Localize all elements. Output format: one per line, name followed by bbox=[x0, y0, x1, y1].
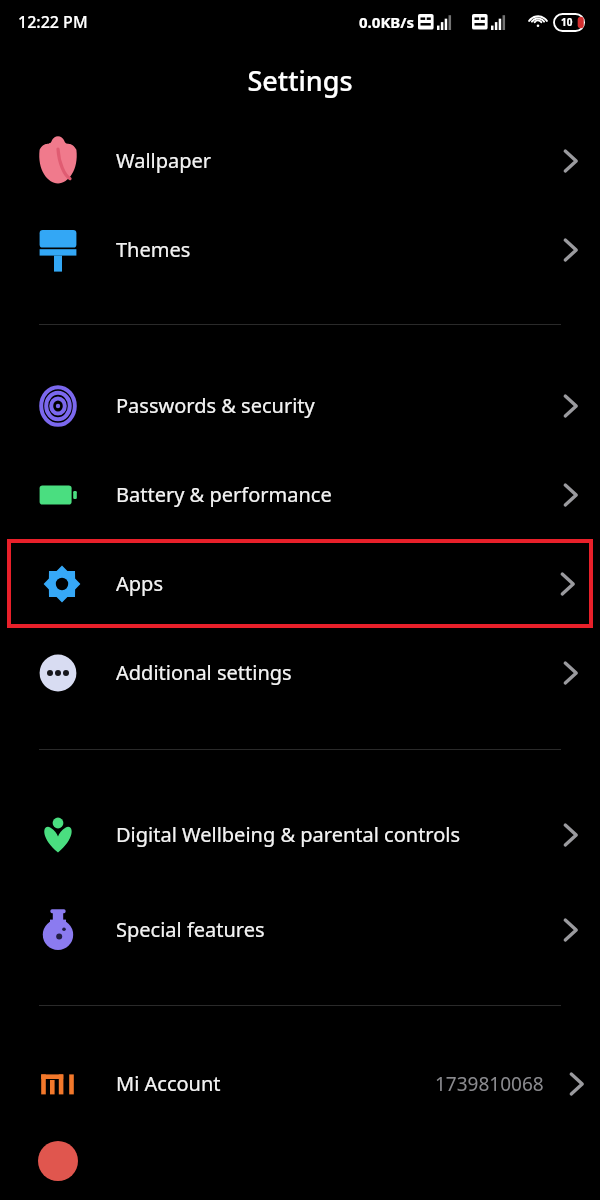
staticText: 0.0KB/s bbox=[359, 12, 415, 32]
staticText: Special features bbox=[116, 916, 534, 943]
button[interactable]: Special features bbox=[0, 885, 600, 974]
button[interactable]: Wallpaper bbox=[0, 116, 600, 205]
staticText: 10 bbox=[561, 15, 573, 29]
staticText: Battery & performance bbox=[116, 481, 534, 508]
button[interactable]: Battery & performance bbox=[0, 450, 600, 539]
staticText: Passwords & security bbox=[116, 392, 534, 419]
button[interactable]: Themes bbox=[0, 205, 600, 294]
button[interactable]: Digital Wellbeing & parental controls bbox=[0, 784, 600, 885]
staticText: Mi Account bbox=[116, 1070, 427, 1097]
button[interactable]: Mi Account bbox=[0, 1039, 600, 1128]
staticText: 12:22 PM bbox=[18, 11, 88, 33]
button[interactable]: Apps bbox=[7, 539, 593, 628]
staticText: Digital Wellbeing & parental controls bbox=[116, 821, 534, 848]
button[interactable] bbox=[0, 1128, 600, 1188]
staticText: Wallpaper bbox=[116, 147, 534, 174]
staticText: Themes bbox=[116, 236, 534, 263]
staticText: 1739810068 bbox=[435, 1071, 544, 1097]
button[interactable]: Passwords & security bbox=[0, 361, 600, 450]
staticText: Additional settings bbox=[116, 659, 534, 686]
button[interactable]: Additional settings bbox=[0, 628, 600, 717]
staticText: Settings bbox=[247, 62, 353, 99]
staticText: Apps bbox=[116, 570, 542, 597]
